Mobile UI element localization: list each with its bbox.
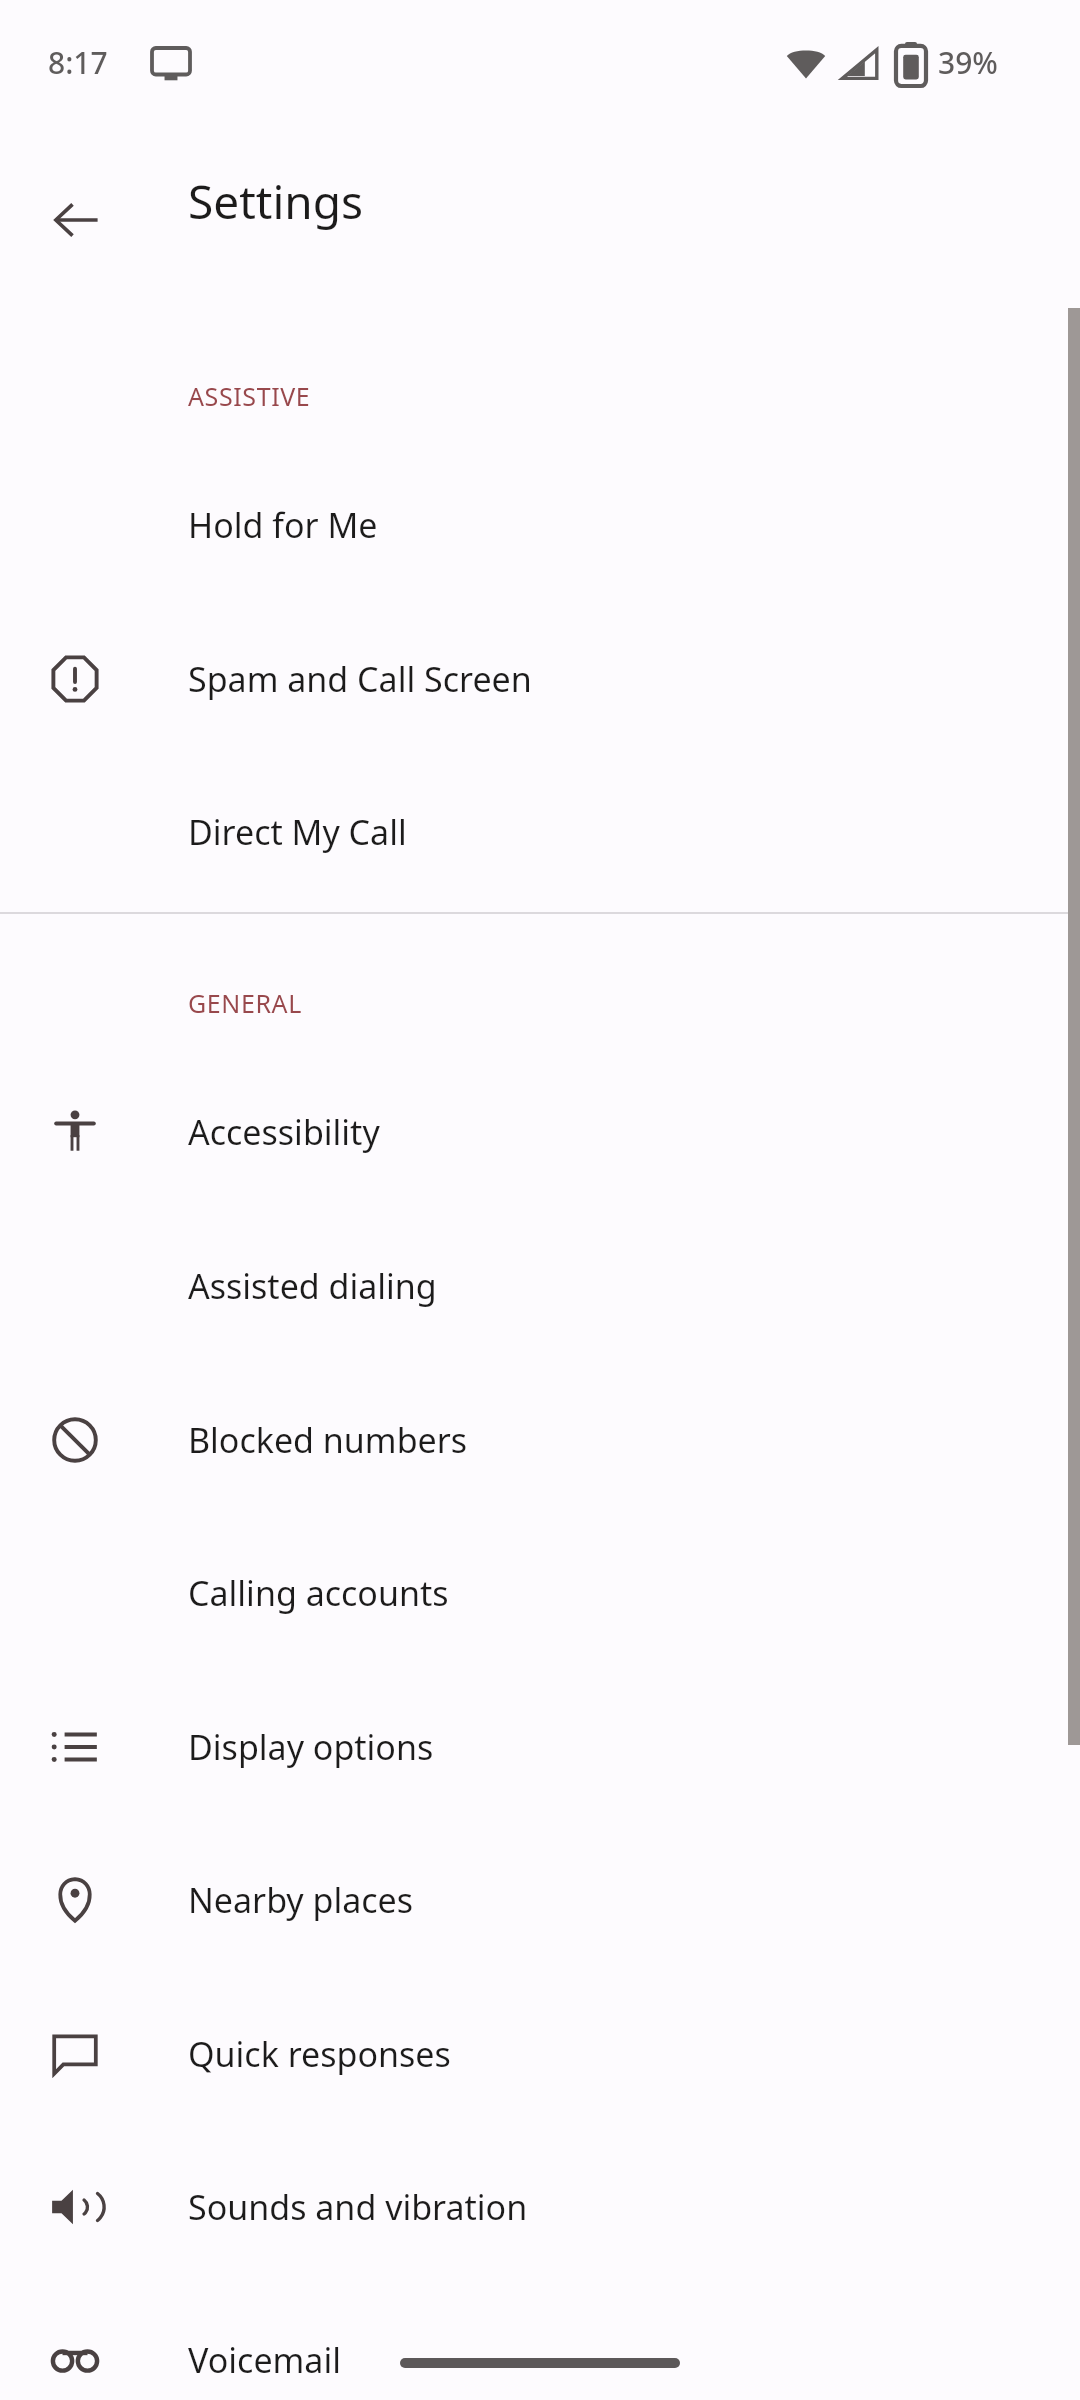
- button[interactable]: Hold for Me: [0, 450, 1080, 600]
- staticText: Sounds and vibration: [188, 2184, 528, 2230]
- staticText: Calling accounts: [188, 1570, 449, 1616]
- staticText: Settings: [188, 170, 364, 233]
- button[interactable]: Nearby places: [0, 1825, 1080, 1975]
- staticText: 8:17: [48, 42, 108, 83]
- staticText: Direct My Call: [188, 809, 407, 855]
- staticText: Nearby places: [188, 1877, 414, 1923]
- staticText: Assisted dialing: [188, 1263, 437, 1309]
- staticText: Quick responses: [188, 2031, 451, 2077]
- button[interactable]: Quick responses: [0, 1979, 1080, 2129]
- staticText: Accessibility: [188, 1109, 380, 1155]
- button[interactable]: Direct My Call: [0, 757, 1080, 907]
- button[interactable]: Calling accounts: [0, 1518, 1080, 1668]
- staticText: Spam and Call Screen: [188, 656, 532, 702]
- button[interactable]: Accessibility: [0, 1057, 1080, 1207]
- button[interactable]: Assisted dialing: [0, 1211, 1080, 1361]
- staticText: GENERAL: [188, 986, 302, 1020]
- staticText: Voicemail: [188, 2337, 341, 2383]
- staticText: Hold for Me: [188, 502, 378, 548]
- button[interactable]: Blocked numbers: [0, 1365, 1080, 1515]
- button[interactable]: Back: [24, 168, 128, 272]
- staticText: Display options: [188, 1724, 434, 1770]
- button[interactable]: Sounds and vibration: [0, 2132, 1080, 2282]
- button[interactable]: Spam and Call Screen: [0, 604, 1080, 754]
- button[interactable]: Voicemail: [0, 2285, 1080, 2400]
- staticText: Blocked numbers: [188, 1417, 468, 1463]
- button[interactable]: Display options: [0, 1672, 1080, 1822]
- staticText: 39%: [938, 42, 998, 83]
- staticText: ASSISTIVE: [188, 379, 311, 413]
